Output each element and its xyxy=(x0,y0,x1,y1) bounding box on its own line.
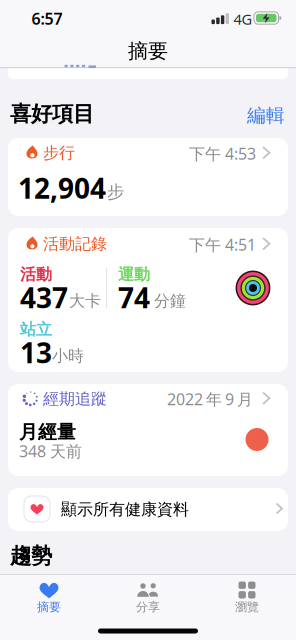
staticText: 摘要 xyxy=(37,600,61,614)
button[interactable]: 摘要 xyxy=(20,580,78,614)
staticText: 顯示所有健康資料 xyxy=(61,500,189,519)
staticText: 分享 xyxy=(136,600,160,614)
staticText: 站立 xyxy=(20,320,52,339)
staticText: 4G xyxy=(233,9,252,29)
button[interactable]: 分享 xyxy=(119,580,177,614)
button[interactable]: 瀏覽 xyxy=(218,580,276,614)
staticText: 喜好項目 xyxy=(10,101,94,127)
staticText: 編輯 xyxy=(247,104,285,127)
staticText: 步行 xyxy=(43,143,75,163)
staticText: 活動記錄 xyxy=(43,234,107,254)
staticText: 月經量 xyxy=(19,420,76,443)
staticText: 經期追蹤 xyxy=(43,389,107,409)
staticText: 下午 4:51 xyxy=(189,234,256,255)
button[interactable]: 步行 xyxy=(8,138,288,216)
staticText: 分鐘 xyxy=(154,291,186,311)
button[interactable]: 經期追蹤 xyxy=(8,384,288,476)
staticText: 瀏覽 xyxy=(235,600,259,614)
staticText: 步 xyxy=(107,181,124,203)
staticText: 437 xyxy=(20,279,68,316)
staticText: 趨勢 xyxy=(10,543,52,569)
button[interactable]: 活動記錄 xyxy=(8,228,288,372)
staticText: 摘要 xyxy=(128,39,168,63)
staticText: 下午 4:53 xyxy=(189,143,256,164)
button[interactable]: 編輯 xyxy=(243,105,285,125)
staticText: 大卡 xyxy=(69,291,101,311)
staticText: 12,904 xyxy=(18,169,106,207)
button[interactable]: 顯示所有健康資料 xyxy=(8,488,288,531)
staticText: 運動 xyxy=(118,265,150,284)
staticText: 6:57 xyxy=(31,8,62,29)
staticText: 活動 xyxy=(20,265,52,284)
staticText: 348 天前 xyxy=(19,440,82,462)
staticText: 13 xyxy=(20,334,52,371)
staticText: 小時 xyxy=(52,346,84,366)
staticText: 2022 年 9 月 xyxy=(167,388,253,410)
staticText: 74 xyxy=(118,279,150,316)
